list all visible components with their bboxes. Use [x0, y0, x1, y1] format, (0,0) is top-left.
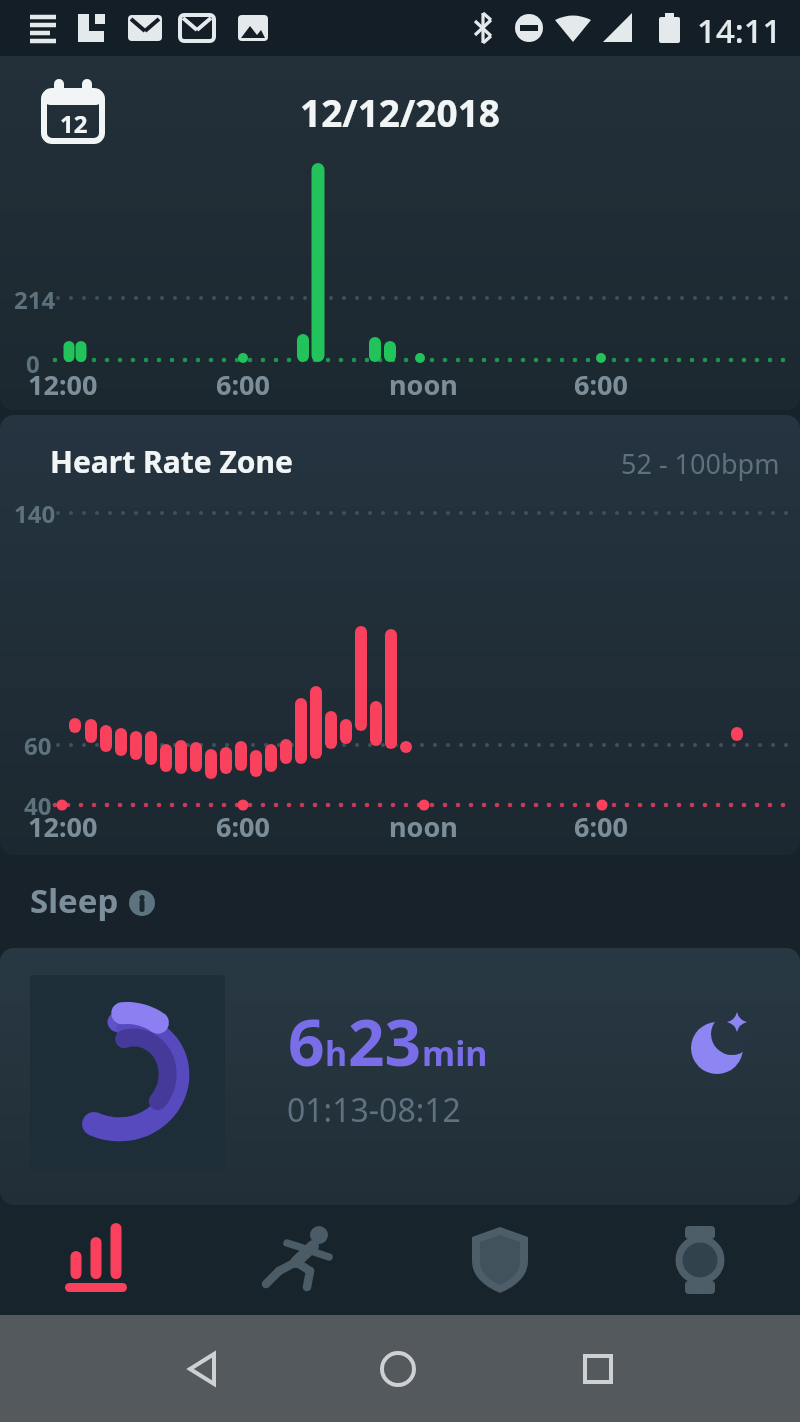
staticText: 12 [60, 107, 88, 140]
staticText: h [325, 1030, 348, 1076]
staticText: 0 [26, 347, 40, 380]
button[interactable]: 12 [30, 68, 118, 154]
staticText: noon [389, 366, 458, 402]
staticText: 12:00 [28, 366, 98, 402]
button[interactable] [142, 1315, 262, 1422]
staticText: 6:00 [216, 366, 270, 402]
staticText: 01:13-08:12 [287, 1088, 461, 1132]
button[interactable] [400, 1205, 600, 1315]
staticText: 12:00 [28, 808, 98, 844]
staticText: 52 - 100bpm [621, 445, 780, 482]
staticText: noon [389, 808, 458, 844]
staticText: 6:00 [574, 808, 628, 844]
staticText: 40 [24, 789, 52, 822]
staticText: 23 [348, 998, 422, 1085]
staticText: min [422, 1030, 488, 1076]
staticText: 6:00 [574, 366, 628, 402]
button[interactable] [538, 1315, 658, 1422]
button[interactable]: 6 [0, 948, 800, 1205]
staticText: 14:11 [697, 8, 782, 53]
staticText: 6:00 [216, 808, 270, 844]
staticText: 6 [288, 998, 325, 1085]
staticText: Sleep [30, 878, 119, 923]
staticText: 12/12/2018 [300, 87, 501, 137]
button[interactable] [338, 1315, 458, 1422]
staticText: 140 [14, 497, 56, 530]
staticText: 60 [24, 729, 52, 762]
button[interactable] [200, 1205, 400, 1315]
staticText: Heart Rate Zone [50, 441, 293, 482]
button[interactable]: Sleep [30, 878, 156, 923]
button[interactable] [600, 1205, 800, 1315]
staticText: 214 [14, 283, 56, 316]
button[interactable] [0, 1205, 200, 1315]
